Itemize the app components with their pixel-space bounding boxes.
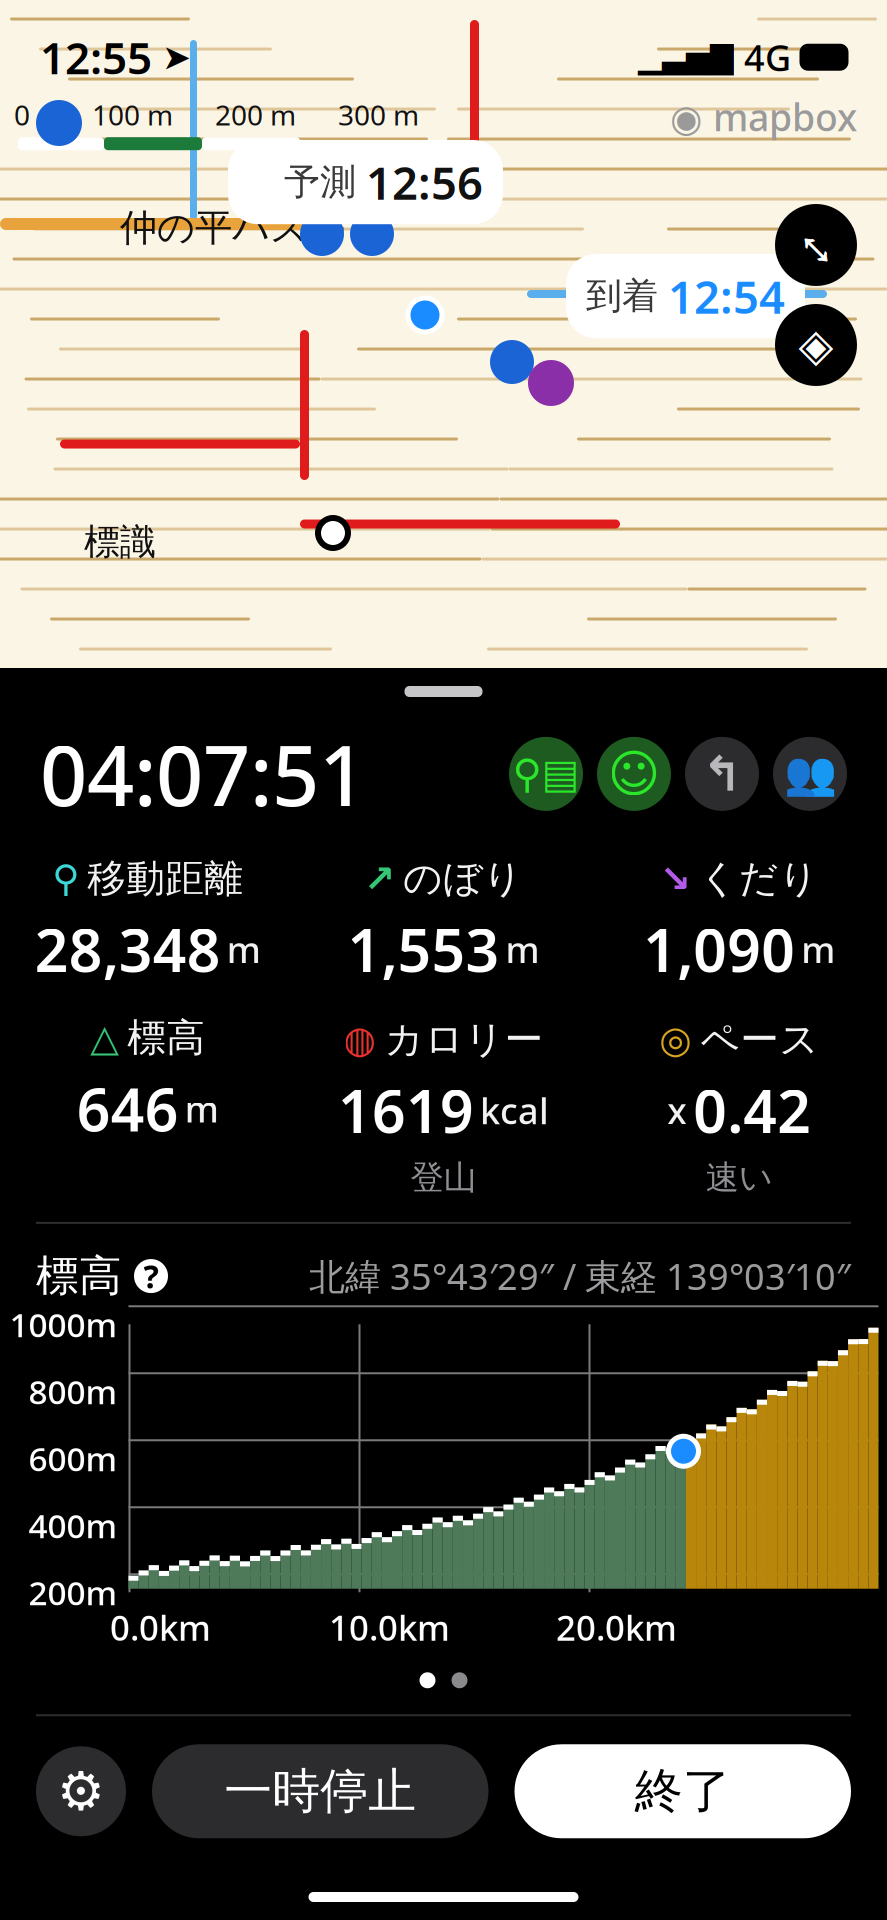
staticText: カロリー <box>384 1016 543 1063</box>
button[interactable]: メンバー <box>773 737 847 811</box>
button[interactable]: 設定 <box>36 1746 126 1836</box>
button[interactable]: メモ一覧 <box>509 737 583 811</box>
staticText: 仲の平バス停 <box>120 205 345 251</box>
staticText: 移動距離 <box>87 855 243 902</box>
staticText: 予測 <box>284 160 356 204</box>
staticText: ◍ <box>343 1018 376 1061</box>
staticText: くだり <box>699 855 819 902</box>
staticText: ◎ <box>659 1018 692 1061</box>
staticText: 北緯 35°43′29″ / 東経 139°03′10″ <box>309 1252 851 1300</box>
staticText: 1,553 <box>347 910 499 988</box>
button[interactable]: 終了 <box>514 1744 851 1838</box>
staticText: 4G <box>744 33 791 81</box>
staticText: 0.0km <box>110 1604 211 1650</box>
staticText: 646 <box>77 1070 179 1148</box>
button[interactable]: 画面を縮小 <box>775 204 857 286</box>
staticText: 標識 <box>84 520 156 564</box>
staticText: m <box>227 925 261 973</box>
staticText: 20.0km <box>556 1604 677 1650</box>
staticText: ペース <box>700 1016 819 1063</box>
staticText: ↗ <box>364 857 395 900</box>
staticText: 標高 <box>36 1250 122 1302</box>
staticText: 600m <box>28 1436 117 1480</box>
staticText: 12:56 <box>366 152 483 212</box>
staticText: 0.42 <box>693 1071 811 1149</box>
staticText: ⚲▤ <box>512 751 579 797</box>
staticText: ↘ <box>660 857 691 900</box>
button[interactable]: メモを追加 <box>597 737 671 811</box>
staticText: m <box>185 1085 219 1132</box>
staticText: ⚲ <box>52 857 79 900</box>
staticText: 28,348 <box>35 910 221 988</box>
staticText: ◉ mapbox <box>670 92 857 142</box>
staticText: 1000m <box>9 1302 117 1346</box>
button[interactable]: 標高について <box>134 1259 168 1293</box>
staticText: 100 m <box>92 96 173 133</box>
staticText: 1619 <box>338 1071 474 1149</box>
staticText: 標高 <box>127 1014 205 1062</box>
staticText: 0 <box>14 96 30 133</box>
button[interactable]: ルート外れ通知 <box>685 737 759 811</box>
staticText: 300 m <box>338 96 419 133</box>
staticText: 速い <box>706 1157 773 1198</box>
staticText: x <box>667 1086 687 1134</box>
staticText: m <box>505 925 539 973</box>
staticText: 10.0km <box>329 1604 450 1650</box>
staticText: 12:54 <box>668 266 785 326</box>
staticText: 400m <box>28 1503 117 1547</box>
staticText: 12:55 <box>40 28 152 86</box>
staticText: 到着 <box>586 274 658 318</box>
staticText: ⤡ <box>799 200 833 290</box>
staticText: 1,090 <box>643 910 795 988</box>
staticText: ◈ <box>798 319 833 371</box>
staticText: 800m <box>28 1369 117 1413</box>
button[interactable]: 地図レイヤー <box>775 304 857 386</box>
staticText: ? <box>143 1255 158 1297</box>
staticText: m <box>801 925 835 973</box>
staticText: kcal <box>480 1086 549 1134</box>
staticText: ▁▃▅▇ <box>638 40 734 75</box>
staticText: 04:07:51 <box>40 719 366 829</box>
staticText: ⚙ <box>57 1761 105 1821</box>
staticText: 200m <box>28 1570 117 1614</box>
staticText: ↰ <box>702 747 742 801</box>
staticText: ➤ <box>162 37 191 77</box>
staticText: のぼり <box>403 855 523 902</box>
staticText: 一時停止 <box>224 1762 416 1821</box>
staticText: 200 m <box>215 96 296 133</box>
staticText: 終了 <box>635 1762 731 1821</box>
staticText: △ <box>90 1017 119 1059</box>
staticText: 登山 <box>410 1157 476 1198</box>
staticText: ☺ <box>607 745 660 803</box>
staticText: 👥 <box>783 749 836 798</box>
button[interactable]: 一時停止 <box>152 1744 488 1838</box>
